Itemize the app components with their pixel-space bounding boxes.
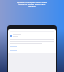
staticText: Simply manage your daily bbox=[0, 0, 64, 3]
staticText: device bbox=[0, 4, 64, 7]
staticText: tasks & notes from any bbox=[0, 2, 64, 5]
